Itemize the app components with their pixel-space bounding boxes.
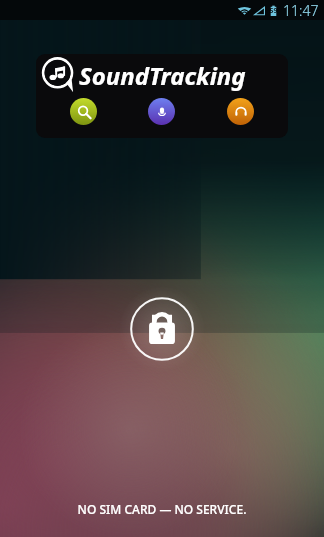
staticText: 11:47 (283, 1, 319, 20)
staticText: SoundTracking (79, 59, 246, 92)
staticText: NO SIM CARD — NO SERVICE. (0, 501, 324, 517)
button[interactable]: Search (70, 98, 97, 125)
button[interactable]: Record (148, 98, 175, 125)
button[interactable]: SoundTracking (36, 54, 288, 138)
button[interactable]: Unlock (123, 290, 201, 368)
staticText: 59 (269, 6, 278, 16)
button[interactable]: Listen (227, 98, 254, 125)
